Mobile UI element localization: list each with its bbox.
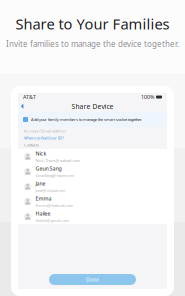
button[interactable]: Hailee [18,209,167,224]
button[interactable]: Nick [18,149,167,164]
button[interactable]: Geun Sang [18,164,167,179]
button[interactable]: Emma [18,194,167,209]
staticText: 100% [141,93,154,101]
staticText: Share Device [71,102,113,111]
staticText: Invite families to manage the device tog… [6,38,179,49]
staticText: Done [86,276,99,283]
staticText: Contacts [24,142,39,148]
staticText: Nick_Davis@outlook.com [35,158,80,163]
staticText: Nick [35,150,46,157]
button[interactable]: Where to find User ID? [24,135,161,141]
button[interactable]: Jane [18,179,167,194]
staticText: Add your family members to manage the sm… [31,117,142,122]
staticText: Emma@hotmail.com [35,203,73,208]
button[interactable]: Done [49,274,136,285]
staticText: Geun Sang [35,165,61,172]
staticText: Jane@icloud.com [35,188,65,193]
staticText: Hailee@gmail.com [35,218,69,223]
staticText: Hailee [35,210,50,217]
staticText: Emma [35,195,51,202]
staticText: Account / Email address [24,128,66,134]
staticText: AT&T [23,93,36,101]
staticText: Share to Your Families [15,14,169,33]
staticText: Jane [35,180,45,187]
staticText: GeunSang@naver.com [35,173,74,178]
staticText: Where to find User ID? [24,135,64,141]
button[interactable]: Back [18,101,27,112]
